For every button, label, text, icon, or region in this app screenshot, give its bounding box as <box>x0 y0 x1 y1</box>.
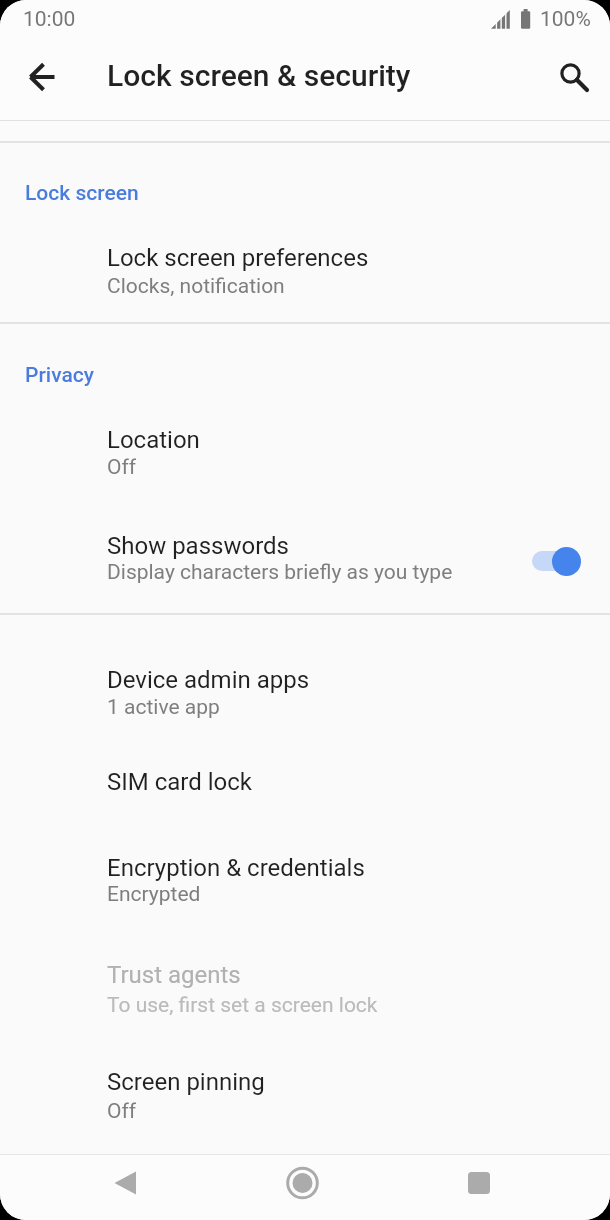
staticText: 1 active app <box>107 695 220 720</box>
staticText: Encryption & credentials <box>107 854 365 882</box>
button[interactable]: SIM card lock <box>0 742 610 820</box>
staticText: Show passwords <box>107 532 290 560</box>
button[interactable] <box>18 53 66 101</box>
button[interactable]: Encryption & credentials <box>0 828 610 934</box>
staticText: SIM card lock <box>107 768 252 796</box>
button[interactable]: Lock screen preferences <box>0 218 610 324</box>
staticText: Lock screen & security <box>107 58 411 93</box>
staticText: Encrypted <box>107 882 201 907</box>
staticText: Privacy <box>25 363 95 388</box>
button[interactable]: Device admin apps <box>0 640 610 746</box>
staticText: Screen pinning <box>107 1068 265 1096</box>
button[interactable] <box>278 1159 326 1207</box>
staticText: Lock screen <box>25 181 139 206</box>
button[interactable] <box>455 1159 503 1207</box>
button[interactable] <box>532 551 580 571</box>
staticText: Lock screen preferences <box>107 244 369 272</box>
staticText: Display characters briefly as you type <box>107 560 453 585</box>
staticText: Off <box>107 455 137 480</box>
button[interactable]: Screen pinning <box>0 1042 610 1148</box>
staticText: Location <box>107 426 200 454</box>
staticText: 100% <box>540 7 591 32</box>
staticText: 10:00 <box>23 7 76 32</box>
button[interactable]: Location <box>0 400 610 506</box>
staticText: Trust agents <box>107 961 241 989</box>
staticText: Off <box>107 1099 137 1124</box>
button[interactable]: Trust agents <box>0 935 610 1041</box>
staticText: Clocks, notification <box>107 274 285 299</box>
staticText: To use, first set a screen lock <box>107 993 378 1018</box>
staticText: Device admin apps <box>107 666 310 694</box>
button[interactable]: Show passwords <box>0 506 610 612</box>
button[interactable] <box>547 51 595 99</box>
button[interactable] <box>103 1159 151 1207</box>
